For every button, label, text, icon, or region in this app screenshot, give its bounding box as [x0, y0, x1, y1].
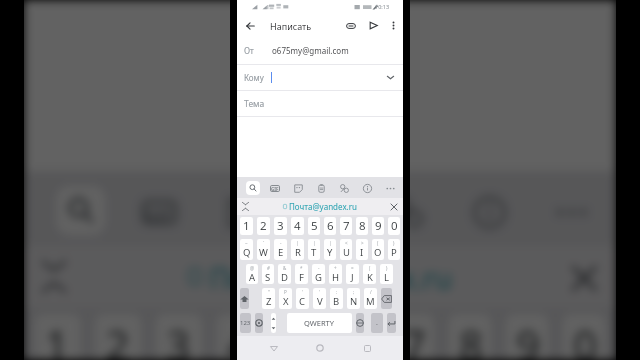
button[interactable]: 9 [372, 217, 384, 235]
button[interactable]: Enter [387, 313, 396, 333]
button[interactable]: ( [372, 239, 384, 260]
button[interactable]: ~ [240, 239, 253, 260]
button[interactable]: gif [267, 180, 283, 196]
button[interactable]: | [324, 239, 336, 260]
button[interactable]: | [308, 239, 320, 260]
button[interactable]: ` [257, 239, 270, 260]
staticText: G [315, 271, 322, 284]
button[interactable]: 7 [340, 217, 352, 235]
button[interactable]: Cursor keys [271, 313, 276, 333]
button[interactable]: Home [310, 338, 330, 358]
button[interactable]: 0 [563, 314, 606, 360]
staticText: W [259, 246, 268, 259]
button[interactable]: ; [347, 288, 360, 309]
button[interactable]: 7 [391, 314, 434, 360]
button[interactable]: Close suggestions [563, 257, 606, 300]
button[interactable]: < [340, 239, 352, 260]
button[interactable]: # [262, 264, 274, 284]
button[interactable]: 4 [291, 217, 304, 235]
button[interactable]: More options [384, 14, 403, 37]
button[interactable]: Change language [356, 313, 364, 333]
button[interactable]: 0 [388, 217, 400, 235]
button[interactable]: - [274, 239, 287, 260]
button[interactable]: ' [296, 288, 309, 309]
button[interactable]: * [295, 264, 308, 284]
button[interactable]: Search [246, 181, 260, 195]
button[interactable]: Тема [237, 91, 403, 116]
button[interactable]: Collapse suggestions [240, 201, 251, 212]
button[interactable]: Search [56, 186, 106, 236]
button[interactable]: Backspace [381, 288, 392, 309]
button[interactable]: 9 [506, 314, 548, 360]
button[interactable]: 4 [216, 314, 263, 360]
staticText: H [332, 271, 340, 284]
button[interactable]: От [237, 37, 403, 64]
staticText: > [361, 240, 364, 246]
button[interactable]: 1 [240, 217, 253, 235]
button[interactable]: ) [380, 264, 393, 284]
button[interactable]: Кому [237, 65, 403, 90]
button[interactable]: sticker [290, 180, 306, 196]
staticText: QWERTY [304, 318, 335, 328]
button[interactable]: @ [246, 264, 258, 284]
button[interactable]: 123 [240, 313, 251, 333]
button[interactable]: sticker [213, 182, 270, 239]
button[interactable]: 1 [34, 314, 81, 360]
button[interactable]: 3 [274, 217, 287, 235]
button[interactable]: info [359, 180, 375, 196]
button[interactable]: 8 [356, 217, 368, 235]
staticText: 1 [243, 218, 250, 234]
staticText: 2 [106, 318, 131, 360]
button[interactable]: Shift [240, 288, 249, 309]
button[interactable]: | [291, 239, 304, 260]
button[interactable]: 6 [334, 314, 377, 360]
button[interactable]: clipboard [313, 180, 329, 196]
button[interactable]: More [382, 180, 398, 196]
staticText: J [351, 271, 354, 284]
button[interactable]: 5 [277, 314, 320, 360]
staticText: ' [302, 289, 304, 295]
button[interactable]: ' [313, 288, 326, 309]
button[interactable]: - [312, 264, 325, 284]
button[interactable]: 2 [257, 217, 270, 235]
button[interactable]: / [364, 288, 377, 309]
staticText: 8 [459, 318, 484, 360]
button[interactable]: " [262, 288, 275, 309]
button[interactable]: 2 [95, 314, 141, 360]
button[interactable]: clipboard [295, 182, 352, 239]
staticText: 0 [573, 318, 598, 360]
button[interactable]: Back [264, 338, 284, 358]
button[interactable]: Attach file [340, 14, 362, 37]
button[interactable]: Collapse suggestions [34, 257, 74, 296]
staticText: GIF [271, 186, 279, 192]
button[interactable]: . [371, 313, 383, 333]
button[interactable]: Send [362, 14, 384, 37]
button[interactable]: 5 [308, 217, 320, 235]
staticText: B [333, 295, 340, 308]
staticText: | [329, 240, 332, 246]
staticText: ) [393, 240, 395, 246]
button[interactable]: = [346, 264, 359, 284]
button[interactable]: Recent apps [357, 338, 377, 358]
button[interactable]: ) [388, 239, 400, 260]
button[interactable]: Close suggestions [388, 201, 400, 213]
button[interactable]: : [330, 288, 343, 309]
button[interactable]: P [279, 288, 292, 309]
button[interactable]: ( [363, 264, 376, 284]
button[interactable]: translate [336, 180, 352, 196]
staticText: 9 [516, 318, 541, 360]
button[interactable]: translate [377, 182, 434, 239]
button[interactable]: > [356, 239, 368, 260]
button[interactable]: 8 [448, 314, 491, 360]
button[interactable]: QWERTY [287, 313, 352, 333]
button[interactable]: Settings [255, 313, 263, 333]
staticText: N [350, 295, 358, 308]
button[interactable]: info [459, 182, 516, 239]
button[interactable]: 6 [324, 217, 336, 235]
button[interactable]: Back [237, 14, 263, 37]
button[interactable]: + [329, 264, 342, 284]
button[interactable]: gif [131, 182, 188, 239]
button[interactable]: & [278, 264, 291, 284]
button[interactable]: 3 [156, 314, 202, 360]
